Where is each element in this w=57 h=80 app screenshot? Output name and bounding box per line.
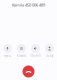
button[interactable]: End call xyxy=(22,65,34,77)
button[interactable]: Speaker xyxy=(28,44,42,57)
staticText: Kamila 450 006 489 xyxy=(12,2,45,7)
button[interactable]: Mute xyxy=(0,44,14,57)
button[interactable]: Keypad xyxy=(14,44,28,57)
staticText: Wycisz xyxy=(4,54,11,57)
staticText: Klawisz xyxy=(17,54,26,57)
button[interactable]: Add call xyxy=(42,44,56,57)
staticText: Dodaj xyxy=(45,54,53,57)
staticText: Głośnik xyxy=(30,54,40,57)
